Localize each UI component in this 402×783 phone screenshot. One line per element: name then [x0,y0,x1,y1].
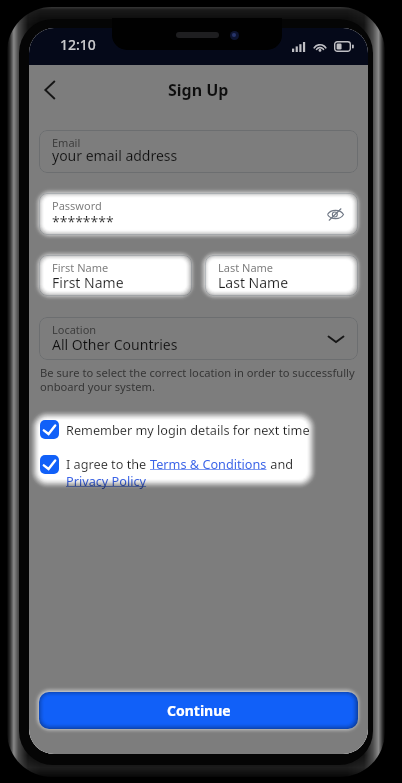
staticText: Sign Up [168,79,229,101]
button[interactable]: Back [32,72,68,108]
button[interactable]: Password [39,193,358,235]
staticText: and [267,455,294,472]
other: Expand location list [325,328,347,350]
staticText: Last Name [218,260,274,275]
staticText: Email [52,135,81,150]
button[interactable]: Remember my login details for next time [40,420,358,439]
button[interactable]: Location [39,317,358,360]
staticText: All Other Countries [52,335,178,354]
staticText: ******** [52,212,114,231]
staticText: onboard your system. [40,379,155,394]
staticText: Be sure to select the correct location i… [40,365,355,380]
staticText: Location [52,322,97,337]
staticText: Remember my login details for next time [66,421,310,438]
staticText: First Name [52,273,124,292]
staticText: I agree to the [66,455,150,472]
button[interactable]: Email [39,130,358,173]
staticText: your email address [52,146,178,165]
staticText: Continue [167,701,231,720]
button[interactable]: Show password [323,202,347,226]
staticText: Privacy Policy [66,472,147,489]
button[interactable]: Continue [39,692,358,729]
button[interactable]: Last Name [205,255,358,296]
button[interactable]: First Name [39,255,192,296]
staticText: Password [52,198,102,213]
staticText: 12:10 [60,35,96,54]
staticText: Terms & Conditions [150,455,267,472]
staticText: First Name [52,260,109,275]
button[interactable]: I agree to the [40,455,358,489]
staticText: Last Name [218,273,289,292]
